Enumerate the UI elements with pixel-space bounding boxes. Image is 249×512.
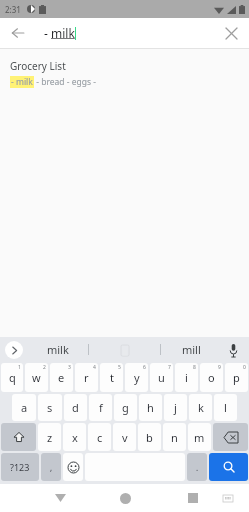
staticText: . [196, 462, 199, 473]
button[interactable]: u [150, 363, 173, 392]
staticText: r [84, 370, 89, 385]
staticText: k [198, 400, 204, 415]
button[interactable]: x [63, 423, 86, 451]
staticText: - bread - eggs - [34, 76, 96, 88]
staticText: u [158, 370, 165, 385]
button[interactable]: l [214, 394, 237, 421]
staticText: 5 [118, 364, 121, 371]
button[interactable]: Hide keyboard [48, 486, 72, 510]
button[interactable]: Emoji [63, 453, 83, 481]
staticText: , [50, 462, 53, 473]
button[interactable]: e [50, 363, 73, 392]
staticText: milk [47, 342, 69, 357]
button[interactable]: milk [28, 337, 88, 362]
button[interactable]: Voice input [223, 340, 243, 360]
button[interactable]: mill [163, 337, 219, 362]
button[interactable]: j [164, 394, 187, 421]
staticText: 2 [43, 364, 46, 371]
staticText: z [47, 430, 53, 445]
button[interactable]: Comma [41, 453, 61, 481]
button[interactable]: More suggestions [5, 341, 23, 359]
staticText: 0 [243, 364, 246, 371]
staticText: v [122, 430, 128, 445]
button[interactable]: p [225, 363, 248, 392]
button[interactable]: Search [209, 453, 248, 481]
button[interactable]: q [1, 363, 23, 392]
button[interactable]: t [100, 363, 123, 392]
button[interactable]: w [25, 363, 48, 392]
button[interactable]: Shift [1, 423, 36, 451]
button[interactable]: ?123 [1, 453, 39, 481]
staticText: t [110, 370, 114, 385]
button[interactable]: k [189, 394, 212, 421]
staticText: s [47, 400, 53, 415]
staticText: o [208, 370, 215, 385]
staticText: j [174, 400, 177, 415]
button[interactable]: h [139, 394, 162, 421]
staticText: mill [182, 342, 201, 357]
staticText: f [99, 400, 103, 415]
button[interactable]: Clear query [218, 20, 244, 46]
staticText: a [21, 400, 28, 415]
button[interactable]: o [200, 363, 223, 392]
button[interactable]: a [12, 394, 36, 421]
staticText: b [146, 430, 153, 445]
staticText: x [72, 430, 78, 445]
staticText: n [171, 430, 178, 445]
staticText: Grocery List [10, 59, 66, 73]
button[interactable]: c [88, 423, 111, 451]
button[interactable]: s [38, 394, 62, 421]
button[interactable]: Period [187, 453, 207, 481]
staticText: - milk [44, 25, 75, 41]
staticText: p [233, 370, 240, 385]
staticText: m [194, 430, 205, 445]
button[interactable]: g [114, 394, 137, 421]
button[interactable]: v [113, 423, 136, 451]
button[interactable]: d [64, 394, 87, 421]
staticText: h [147, 400, 154, 415]
button[interactable]: Recent apps [181, 486, 205, 510]
staticText: 4 [93, 364, 96, 371]
staticText: 7 [168, 364, 171, 371]
staticText: c [97, 430, 103, 445]
button[interactable]: z [38, 423, 61, 451]
button[interactable]: Back [5, 20, 31, 46]
staticText: 1 [18, 364, 21, 371]
button[interactable]: Backspace [213, 423, 248, 451]
staticText: - milk [11, 76, 33, 88]
button[interactable]: Grocery List [0, 49, 249, 96]
button[interactable]: Home [113, 486, 137, 510]
staticText: e [58, 370, 65, 385]
staticText: d [72, 400, 79, 415]
staticText: i [185, 370, 188, 385]
other: Keyboard active [219, 489, 237, 507]
staticText: y [134, 370, 140, 385]
button[interactable]: b [138, 423, 161, 451]
staticText: 9 [218, 364, 221, 371]
staticText: 8 [193, 364, 196, 371]
button[interactable]: n [163, 423, 186, 451]
staticText: 3 [68, 364, 71, 371]
staticText: l [224, 400, 227, 415]
button[interactable]: i [175, 363, 198, 392]
staticText: ?123 [10, 461, 30, 473]
button[interactable]: m [188, 423, 211, 451]
button[interactable]: f [89, 394, 112, 421]
button[interactable]: r [75, 363, 98, 392]
staticText: 6 [143, 364, 146, 371]
button[interactable]: y [125, 363, 148, 392]
staticText: 2:31 [5, 4, 21, 15]
staticText: g [122, 400, 129, 415]
staticText: q [9, 370, 16, 385]
staticText: w [32, 370, 41, 385]
